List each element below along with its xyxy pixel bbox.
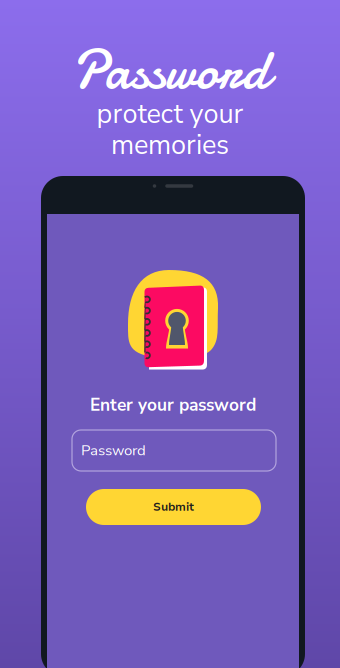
staticText: Password [71, 31, 268, 108]
staticText: memories [111, 126, 229, 163]
staticText: protect your [96, 95, 243, 132]
button[interactable]: Submit [86, 489, 261, 525]
staticText: Enter your password [90, 393, 256, 417]
staticText: Password [81, 440, 146, 460]
staticText: Submit [153, 499, 194, 515]
